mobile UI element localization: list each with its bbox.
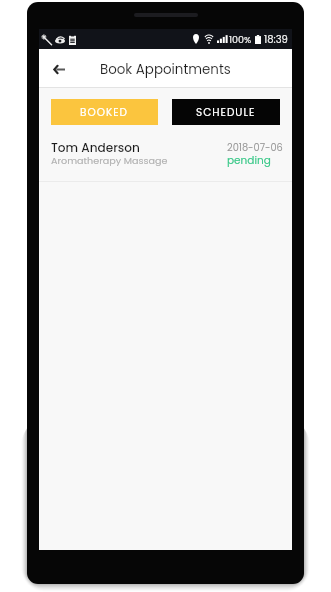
staticText: 18:39 xyxy=(264,32,288,46)
button[interactable]: BOOKED xyxy=(51,99,158,125)
staticText: Tom Anderson xyxy=(51,139,140,156)
button[interactable]: Back xyxy=(44,54,74,84)
button[interactable]: Tom Anderson xyxy=(39,137,292,181)
staticText: BOOKED xyxy=(80,105,129,120)
staticText: Book Appointments xyxy=(100,60,231,79)
button[interactable]: SCHEDULE xyxy=(172,99,280,125)
staticText: pending xyxy=(227,153,271,168)
staticText: SCHEDULE xyxy=(196,105,256,120)
staticText: 2018-07-06 xyxy=(227,141,283,155)
staticText: Aromatherapy Massage xyxy=(51,154,168,167)
staticText: 100% xyxy=(229,33,252,46)
